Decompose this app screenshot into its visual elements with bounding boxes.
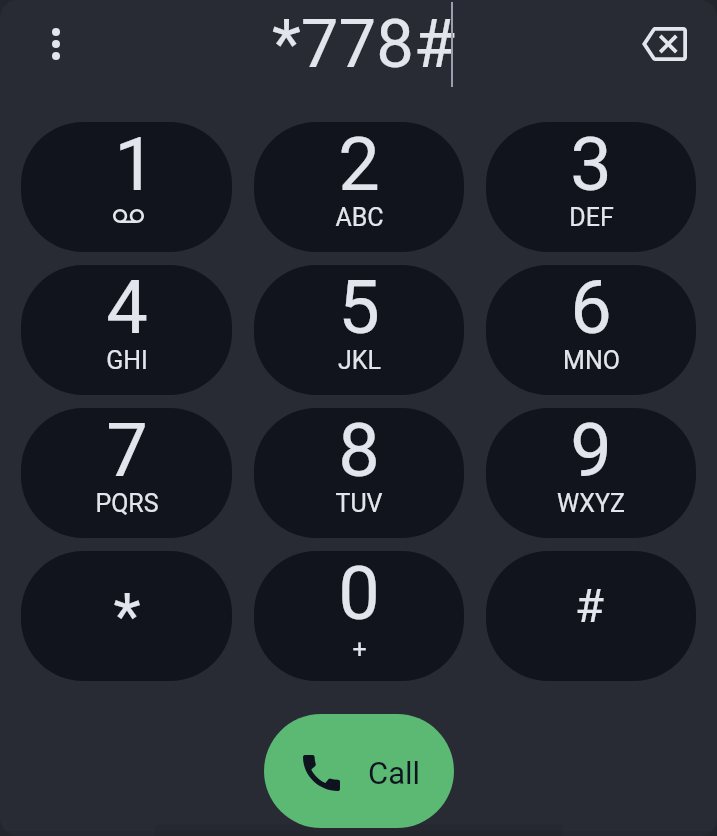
button[interactable]: 8: [254, 408, 464, 538]
staticText: 2: [338, 122, 380, 208]
button[interactable]: *: [21, 551, 232, 681]
staticText: PQRS: [95, 489, 159, 518]
button[interactable]: 9: [486, 408, 696, 538]
staticText: +: [352, 635, 367, 664]
staticText: 7: [106, 408, 148, 494]
staticText: 3: [570, 122, 612, 208]
button[interactable]: 0: [254, 551, 464, 681]
staticText: 8: [338, 408, 380, 494]
staticText: *: [113, 580, 141, 654]
staticText: #: [575, 578, 604, 633]
button[interactable]: 4: [21, 265, 232, 395]
button[interactable]: Backspace: [636, 16, 692, 72]
staticText: WXYZ: [557, 489, 625, 518]
button[interactable]: Call: [264, 714, 454, 828]
button[interactable]: 5: [254, 265, 464, 395]
staticText: GHI: [106, 346, 148, 375]
button[interactable]: *778#: [100, 0, 620, 88]
button[interactable]: 7: [21, 408, 232, 538]
staticText: 5: [338, 265, 380, 351]
staticText: MNO: [563, 346, 620, 375]
staticText: 1: [114, 122, 156, 208]
staticText: 6: [570, 265, 612, 351]
button[interactable]: More options: [32, 20, 80, 68]
button[interactable]: 6: [486, 265, 696, 395]
button[interactable]: #: [486, 551, 696, 681]
staticText: ABC: [335, 203, 384, 232]
staticText: *778#: [272, 5, 456, 84]
button[interactable]: 2: [254, 122, 464, 252]
staticText: TUV: [335, 489, 383, 518]
button[interactable]: 1: [21, 122, 232, 252]
staticText: 4: [106, 265, 148, 351]
staticText: 9: [570, 408, 612, 494]
staticText: DEF: [569, 203, 614, 232]
staticText: 0: [338, 551, 380, 637]
button[interactable]: 3: [486, 122, 696, 252]
staticText: JKL: [338, 346, 381, 375]
staticText: Call: [368, 755, 421, 791]
